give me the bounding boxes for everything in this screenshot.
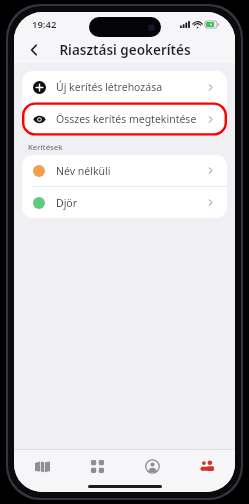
button[interactable]: Contacts bbox=[180, 452, 235, 480]
staticText: Djör bbox=[56, 196, 206, 210]
button[interactable]: Djör bbox=[22, 187, 227, 218]
staticText: Név nélküli bbox=[56, 164, 206, 178]
staticText: Új kerítés létrehozása bbox=[56, 80, 206, 94]
button[interactable]: Új kerítés létrehozása bbox=[22, 71, 227, 103]
staticText: 19:42 bbox=[32, 18, 57, 31]
button[interactable]: Név nélküli bbox=[22, 155, 227, 186]
button[interactable]: Profile bbox=[125, 452, 180, 480]
button[interactable]: Map bbox=[14, 452, 70, 480]
button[interactable]: Összes kerítés megtekintése bbox=[22, 103, 227, 135]
staticText: Kerítések bbox=[28, 142, 63, 152]
button[interactable]: Back bbox=[22, 38, 46, 62]
staticText: Riasztási geokerítés bbox=[59, 41, 191, 59]
staticText: Összes kerítés megtekintése bbox=[56, 112, 206, 126]
button[interactable]: Dashboard bbox=[70, 452, 125, 480]
